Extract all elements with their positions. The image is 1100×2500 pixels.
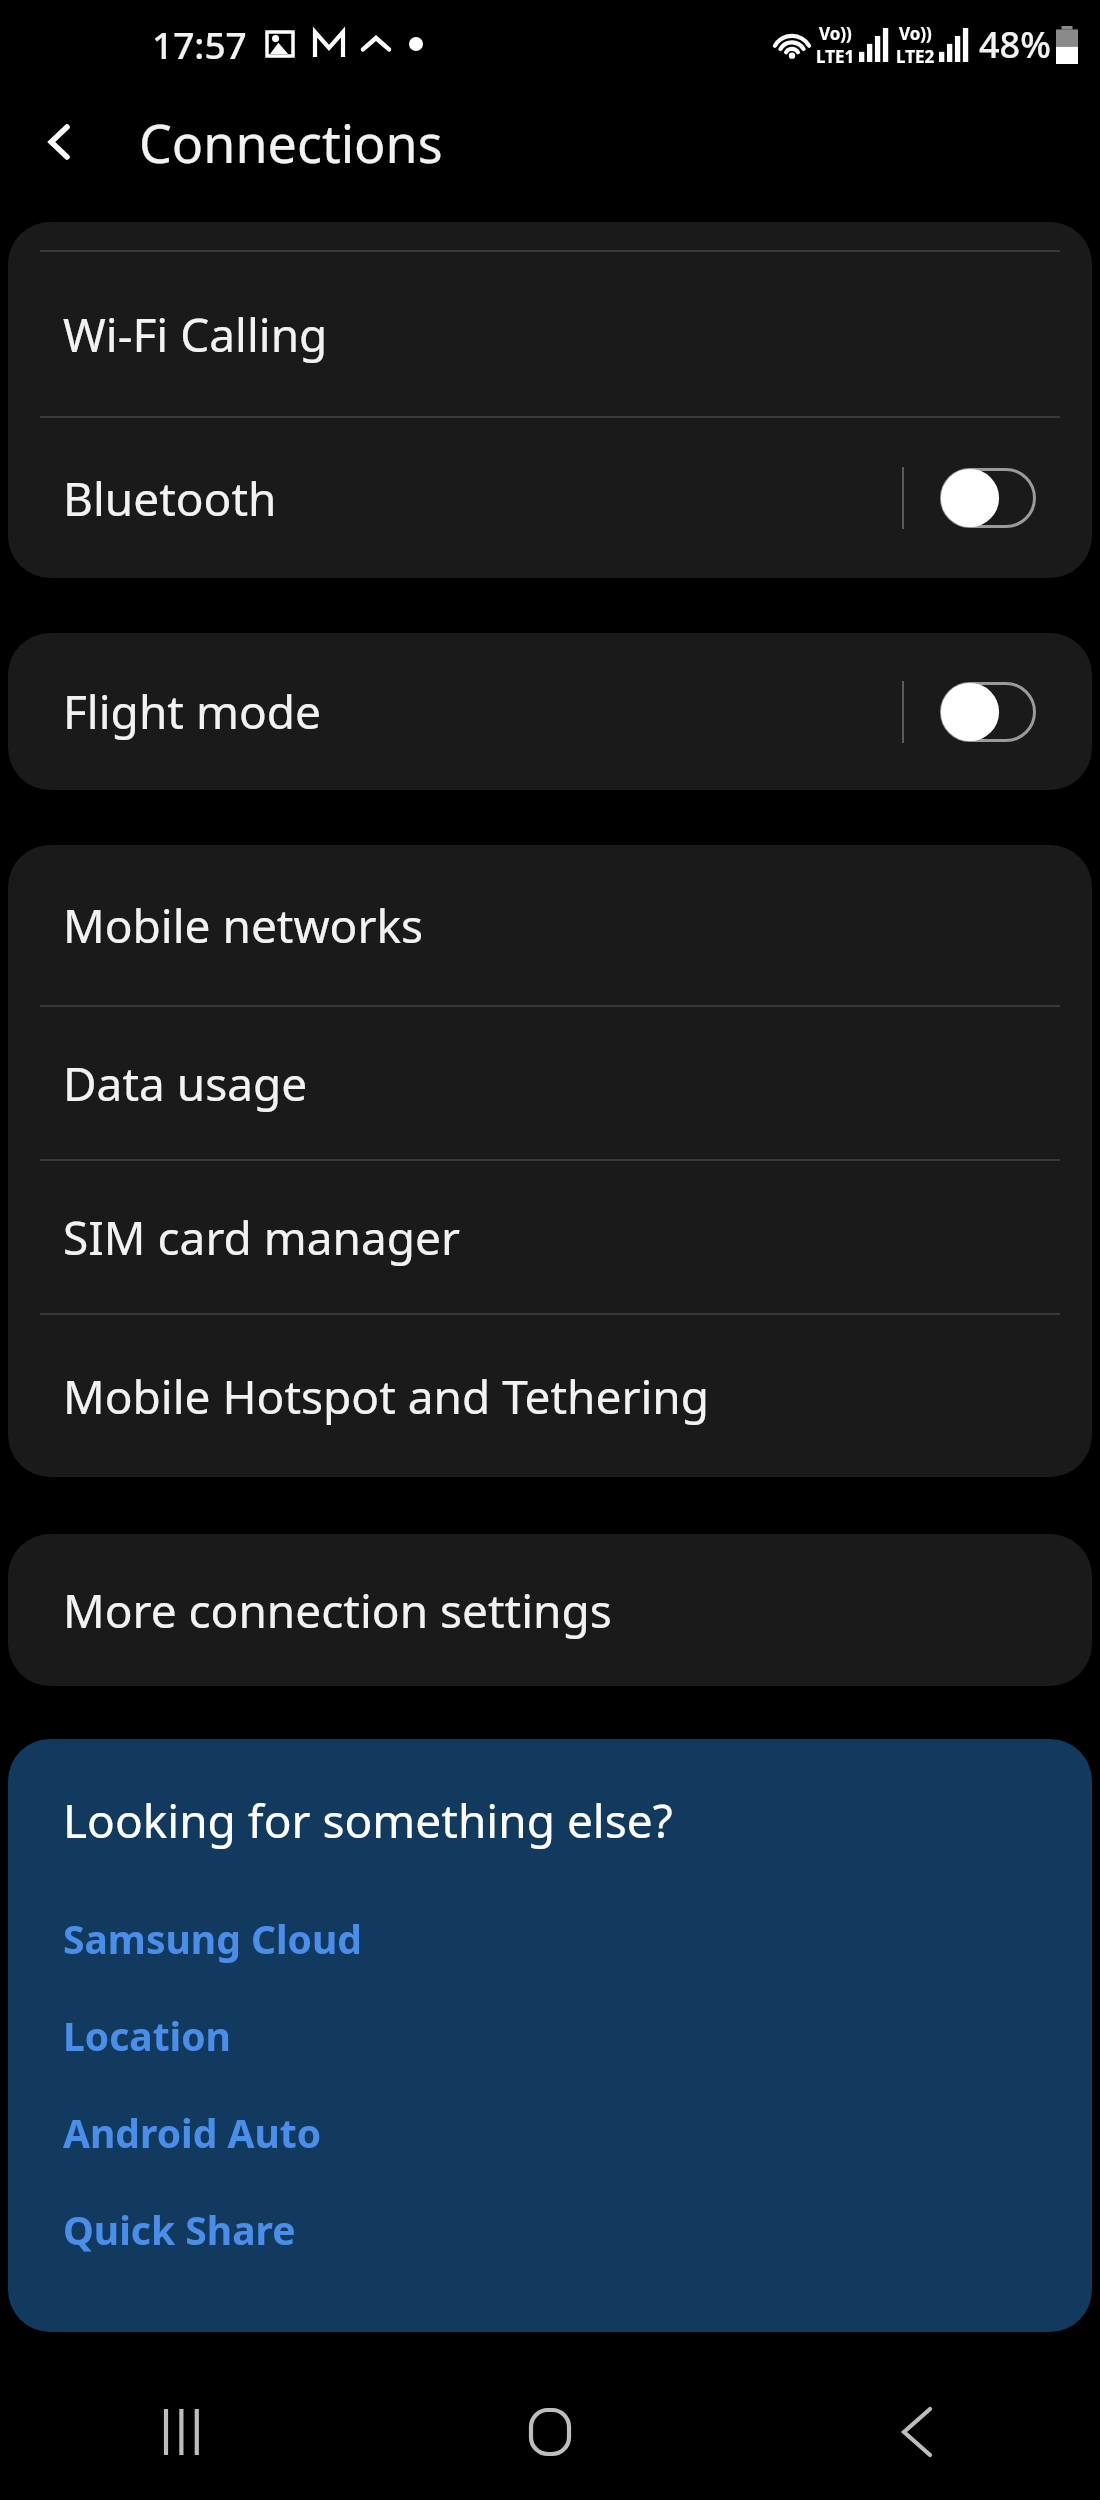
- button[interactable]: Wi-Fi Calling: [8, 252, 1092, 416]
- button[interactable]: Recents: [0, 2363, 366, 2500]
- staticText: Location: [63, 2009, 231, 2062]
- button[interactable]: Data usage: [8, 1007, 1092, 1159]
- button[interactable]: Mobile networks: [8, 845, 1092, 1005]
- staticText: Samsung Cloud: [63, 1912, 362, 1965]
- staticText: Vo)): [819, 22, 852, 45]
- button[interactable]: Samsung Cloud: [8, 1890, 1092, 1987]
- staticText: Bluetooth: [63, 467, 277, 530]
- button[interactable]: Mobile Hotspot and Tethering: [8, 1315, 1092, 1477]
- button[interactable]: Bluetooth toggle, off: [940, 468, 1036, 528]
- staticText: 17:57: [152, 19, 247, 69]
- staticText: Data usage: [63, 1052, 308, 1115]
- staticText: Wi-Fi Calling: [63, 303, 328, 366]
- staticText: Flight mode: [63, 680, 321, 743]
- staticText: Connections: [139, 107, 443, 178]
- staticText: Quick Share: [63, 2203, 296, 2256]
- button[interactable]: Back: [733, 2363, 1100, 2500]
- button[interactable]: Home: [366, 2363, 733, 2500]
- button[interactable]: Location: [8, 1987, 1092, 2084]
- staticText: More connection settings: [63, 1579, 612, 1642]
- button[interactable]: Quick Share: [8, 2181, 1092, 2278]
- staticText: SIM card manager: [63, 1206, 461, 1269]
- staticText: Looking for something else?: [63, 1789, 673, 1852]
- button[interactable]: Android Auto: [8, 2084, 1092, 2181]
- button[interactable]: Back: [22, 104, 98, 180]
- staticText: LTE2: [896, 45, 935, 68]
- button[interactable]: SIM card manager: [8, 1161, 1092, 1313]
- staticText: Android Auto: [63, 2106, 322, 2159]
- staticText: 48%: [979, 20, 1051, 69]
- staticText: Mobile Hotspot and Tethering: [63, 1365, 710, 1428]
- button[interactable]: Flight mode toggle, off: [940, 682, 1036, 742]
- button[interactable]: Bluetooth: [8, 418, 1092, 578]
- staticText: Mobile networks: [63, 894, 424, 957]
- button[interactable]: More connection settings: [8, 1534, 1092, 1686]
- staticText: Vo)): [899, 22, 932, 45]
- button[interactable]: Flight mode: [8, 633, 1092, 790]
- staticText: LTE1: [816, 45, 855, 68]
